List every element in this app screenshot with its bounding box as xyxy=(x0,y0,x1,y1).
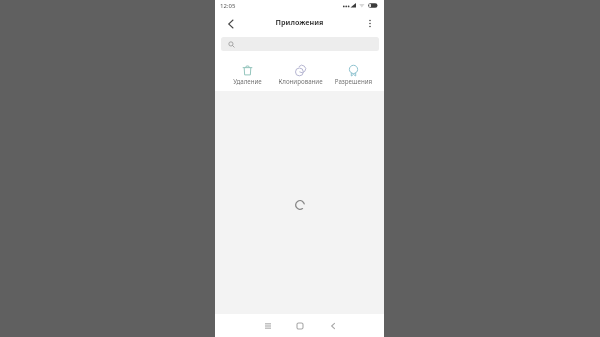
staticText: Удаление xyxy=(221,77,274,85)
button[interactable]: Back xyxy=(324,319,341,333)
button[interactable]: Home xyxy=(291,319,308,333)
button[interactable]: Search xyxy=(221,37,379,51)
staticText: Приложения xyxy=(215,17,384,27)
button[interactable]: More options xyxy=(360,14,377,33)
button[interactable]: Клонирование xyxy=(274,61,327,88)
staticText: 12:05 xyxy=(220,2,236,10)
button[interactable]: Разрешения xyxy=(327,61,380,88)
button[interactable]: Recents xyxy=(259,319,276,333)
staticText: Разрешения xyxy=(327,77,380,85)
staticText: Клонирование xyxy=(274,77,327,85)
button[interactable]: Удаление xyxy=(221,61,274,88)
button[interactable]: Back xyxy=(222,14,239,33)
